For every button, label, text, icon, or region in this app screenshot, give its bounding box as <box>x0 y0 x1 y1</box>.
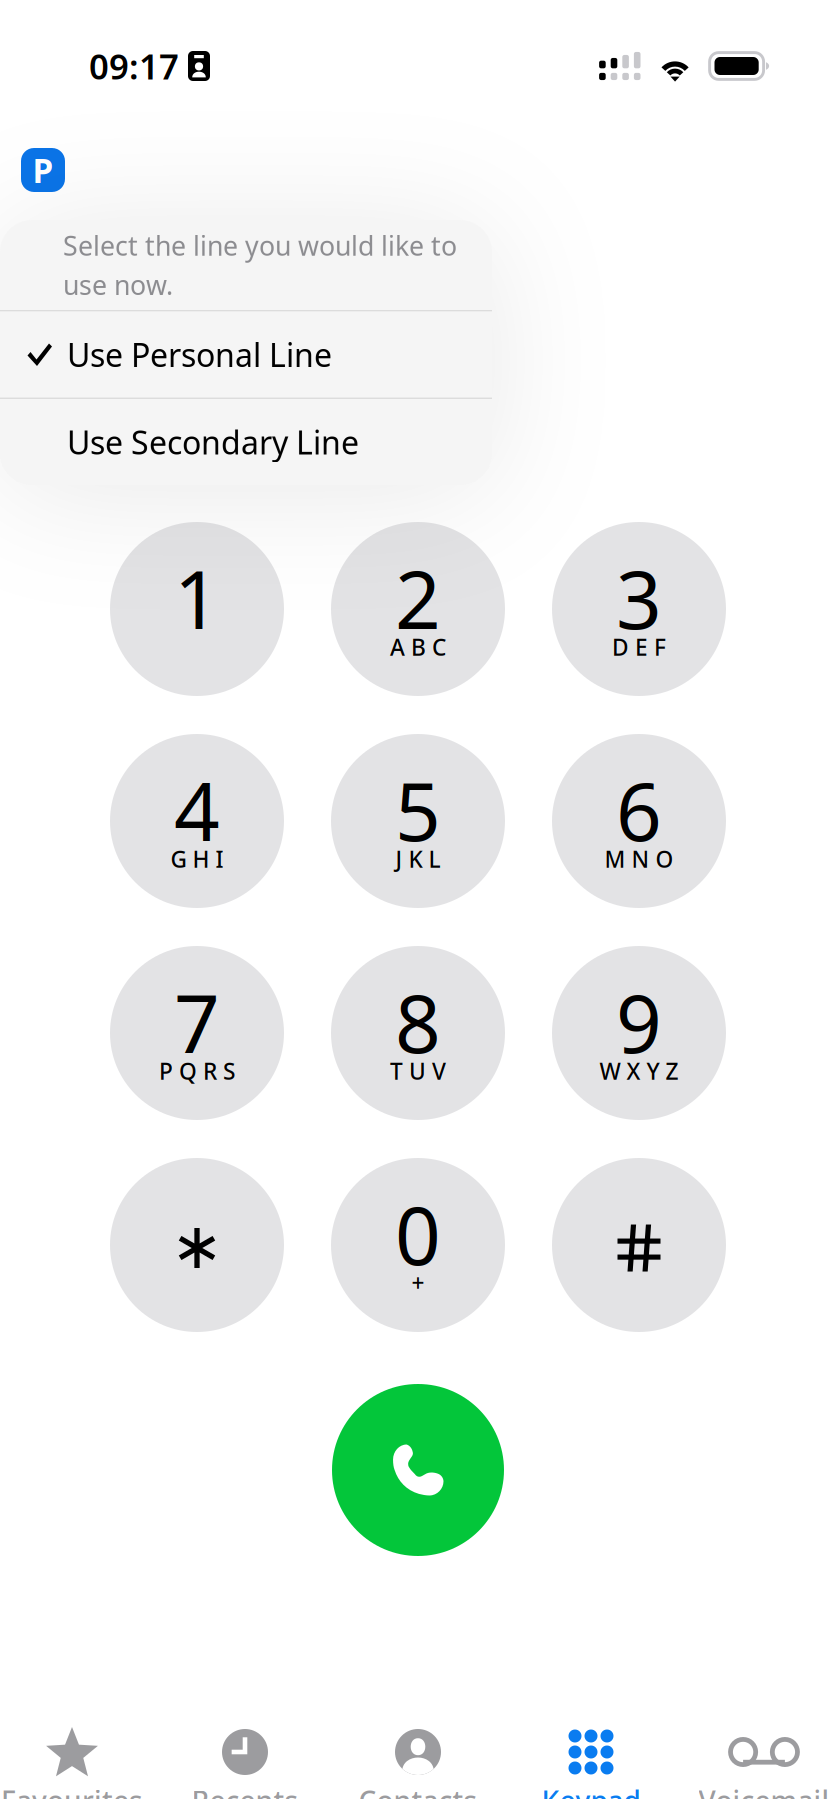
button[interactable]: Keypad <box>504 1728 677 1799</box>
staticText: 0 <box>395 1181 441 1287</box>
staticText: J K L <box>395 844 440 874</box>
staticText: 1 <box>174 545 220 651</box>
button[interactable]: 8 <box>331 946 505 1120</box>
staticText: A B C <box>390 632 446 662</box>
staticText: 7 <box>174 969 220 1075</box>
staticText: 09:17 <box>89 43 179 89</box>
staticText: Favourites <box>1 1782 143 1799</box>
button[interactable]: Contacts <box>331 1728 504 1799</box>
button[interactable]: Use Secondary Line <box>0 399 492 485</box>
button[interactable]: Use Personal Line <box>0 311 492 397</box>
staticText: D E F <box>612 632 666 662</box>
staticText: 2 <box>395 545 441 651</box>
staticText: W X Y Z <box>599 1056 678 1086</box>
staticText: 6 <box>616 757 662 863</box>
staticText: use now. <box>63 267 173 302</box>
staticText: 8 <box>395 969 441 1075</box>
button[interactable]: 2 <box>331 522 505 696</box>
staticText: Select the line you would like to <box>63 228 457 263</box>
staticText: 3 <box>616 545 662 651</box>
staticText: 9 <box>616 969 662 1075</box>
button[interactable]: Star <box>110 1158 284 1332</box>
button[interactable]: Personal line <box>21 148 65 192</box>
button[interactable]: 6 <box>552 734 726 908</box>
staticText: Keypad <box>541 1782 640 1799</box>
staticText: M N O <box>604 844 673 874</box>
button[interactable]: 4 <box>110 734 284 908</box>
button[interactable]: Recents <box>158 1728 331 1799</box>
staticText: Recents <box>191 1782 298 1799</box>
staticText: P <box>32 148 53 192</box>
staticText: Use Secondary Line <box>67 421 359 463</box>
staticText: Voicemail <box>698 1782 829 1799</box>
staticText: + <box>411 1268 424 1298</box>
button[interactable]: 5 <box>331 734 505 908</box>
button[interactable]: 3 <box>552 522 726 696</box>
button[interactable]: Favourites <box>0 1728 158 1799</box>
button[interactable]: 7 <box>110 946 284 1120</box>
staticText: 4 <box>174 757 220 863</box>
button[interactable]: 1 <box>110 522 284 696</box>
staticText: G H I <box>170 844 223 874</box>
button[interactable]: Call <box>332 1384 504 1556</box>
button[interactable]: Pound <box>552 1158 726 1332</box>
staticText: 5 <box>395 757 441 863</box>
staticText: Contacts <box>358 1782 477 1799</box>
button[interactable]: Voicemail <box>677 1728 836 1799</box>
staticText: T U V <box>390 1056 446 1086</box>
staticText: P Q R S <box>159 1056 235 1086</box>
button[interactable]: 9 <box>552 946 726 1120</box>
staticText: Use Personal Line <box>67 333 332 376</box>
button[interactable]: 0 <box>331 1158 505 1332</box>
